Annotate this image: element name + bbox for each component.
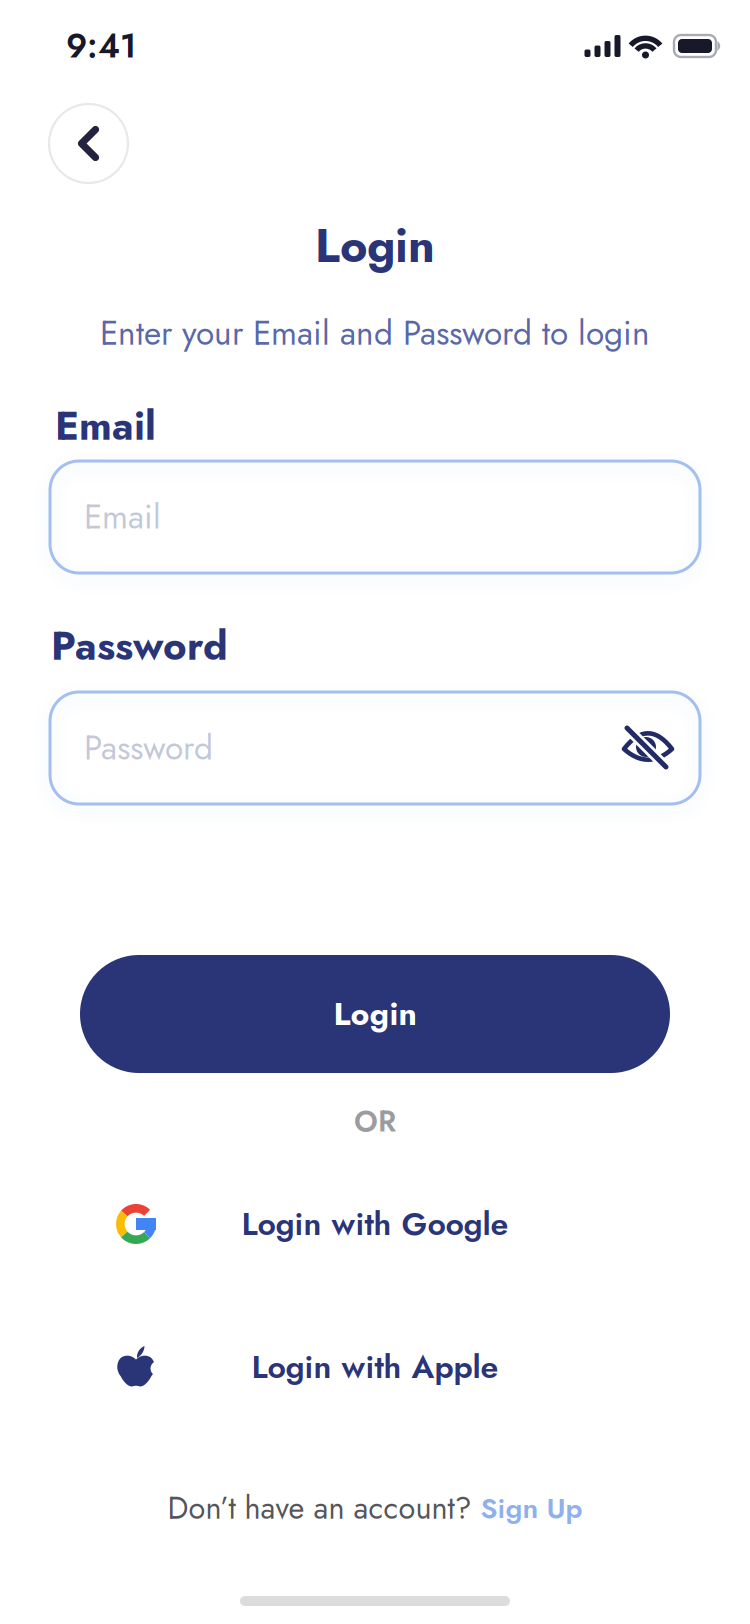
staticText: OR (354, 1100, 396, 1142)
staticText: Email (55, 397, 156, 455)
staticText: Password (84, 724, 213, 772)
staticText: Email (84, 493, 161, 541)
staticText: Login (333, 991, 416, 1037)
staticText: Login with Apple (251, 1344, 498, 1390)
staticText: Don’t have an account? (167, 1486, 480, 1530)
staticText: Login with Google (241, 1201, 508, 1247)
staticText: Login (315, 212, 435, 279)
staticText: Enter your Email and Password to login (100, 309, 650, 357)
staticText: 9:41 (66, 22, 136, 70)
staticText: Sign Up (480, 1488, 582, 1528)
staticText: Password (51, 617, 228, 675)
